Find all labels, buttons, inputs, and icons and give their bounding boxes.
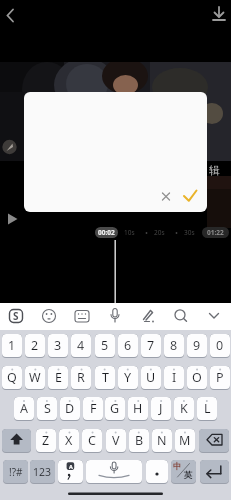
staticText: !?# — [9, 465, 23, 479]
staticText: 7 — [147, 337, 155, 354]
staticText: Y — [124, 369, 132, 386]
staticText: L — [204, 400, 211, 417]
button[interactable]: H — [128, 397, 148, 421]
staticText: 9 — [193, 337, 201, 354]
staticText: A — [69, 463, 73, 470]
button[interactable]: L — [197, 397, 217, 421]
button[interactable]: 9 — [187, 334, 207, 358]
staticText: G — [110, 400, 120, 417]
staticText: 3 — [54, 337, 62, 354]
button[interactable] — [104, 305, 126, 328]
button[interactable] — [58, 460, 83, 484]
staticText: T — [102, 369, 109, 386]
staticText: X — [65, 432, 73, 449]
button[interactable] — [4, 210, 22, 228]
button[interactable]: 0 — [210, 334, 230, 358]
staticText: W — [29, 369, 41, 386]
button[interactable]: M — [175, 429, 195, 453]
button[interactable] — [170, 305, 192, 328]
button[interactable]: E — [48, 366, 68, 390]
staticText: 30s — [184, 228, 195, 237]
button[interactable] — [137, 305, 159, 328]
button[interactable]: W — [25, 366, 45, 390]
button[interactable] — [171, 460, 196, 484]
button[interactable]: S — [37, 397, 57, 421]
button[interactable]: 123 — [30, 460, 55, 484]
button[interactable] — [2, 6, 20, 24]
button[interactable] — [146, 460, 168, 484]
button[interactable]: Y — [118, 366, 138, 390]
staticText: 8 — [170, 337, 178, 354]
staticText: 20s — [154, 228, 165, 237]
staticText: J — [159, 400, 163, 417]
button[interactable] — [86, 460, 142, 484]
button[interactable]: !?# — [3, 460, 28, 484]
button[interactable]: C — [82, 429, 102, 453]
button[interactable] — [203, 305, 225, 328]
button[interactable]: N — [152, 429, 172, 453]
staticText: O — [192, 369, 202, 386]
staticText: 辑 — [209, 163, 220, 177]
staticText: P — [216, 369, 224, 386]
button[interactable]: Z — [36, 429, 56, 453]
staticText: N — [157, 432, 167, 449]
button[interactable] — [2, 139, 17, 154]
staticText: S — [44, 400, 51, 417]
button[interactable]: A — [14, 397, 34, 421]
button[interactable] — [5, 305, 27, 328]
button[interactable]: 6 — [118, 334, 138, 358]
button[interactable]: P — [210, 366, 230, 390]
staticText: 5 — [101, 337, 109, 354]
button[interactable]: O — [187, 366, 207, 390]
button[interactable] — [199, 429, 229, 453]
staticText: 1 — [8, 337, 16, 354]
staticText: K — [180, 400, 188, 417]
staticText: I — [172, 369, 177, 386]
button[interactable]: 1 — [2, 334, 22, 358]
button[interactable]: 2 — [25, 334, 45, 358]
button[interactable]: 4 — [71, 334, 91, 358]
button[interactable] — [200, 460, 229, 484]
staticText: 0 — [216, 337, 224, 354]
button[interactable]: G — [105, 397, 125, 421]
button[interactable]: 3 — [48, 334, 68, 358]
button[interactable]: D — [60, 397, 80, 421]
staticText: R — [77, 369, 85, 386]
staticText: S — [13, 309, 19, 323]
button[interactable]: B — [129, 429, 149, 453]
staticText: C — [88, 432, 96, 449]
button[interactable]: 7 — [141, 334, 161, 358]
staticText: B — [135, 432, 144, 449]
button[interactable] — [208, 4, 228, 24]
staticText: 2 — [31, 337, 39, 354]
staticText: 01:22 — [207, 228, 224, 237]
staticText: H — [133, 400, 143, 417]
button[interactable] — [180, 186, 202, 207]
button[interactable]: T — [95, 366, 115, 390]
button[interactable] — [156, 187, 176, 207]
staticText: E — [55, 369, 62, 386]
button[interactable] — [38, 305, 60, 328]
button[interactable]: K — [174, 397, 194, 421]
button[interactable]: I — [164, 366, 184, 390]
staticText: 中 — [173, 461, 182, 472]
staticText: 123 — [33, 465, 52, 479]
button[interactable] — [71, 305, 93, 328]
staticText: F — [90, 400, 97, 417]
button[interactable]: R — [71, 366, 91, 390]
button[interactable]: Q — [2, 366, 22, 390]
staticText: U — [146, 369, 156, 386]
staticText: V — [112, 432, 120, 449]
staticText: Z — [42, 432, 50, 449]
staticText: 00:02 — [98, 228, 115, 237]
button[interactable]: X — [59, 429, 79, 453]
button[interactable]: 5 — [95, 334, 115, 358]
button[interactable]: J — [151, 397, 171, 421]
button[interactable]: U — [141, 366, 161, 390]
button[interactable]: V — [106, 429, 126, 453]
button[interactable]: F — [83, 397, 103, 421]
button[interactable] — [2, 429, 31, 453]
staticText: M — [179, 432, 191, 449]
button[interactable]: 8 — [164, 334, 184, 358]
staticText: D — [65, 400, 75, 417]
